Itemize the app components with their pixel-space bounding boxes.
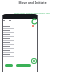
button[interactable]: [3, 50, 38, 53]
button[interactable]: [5, 64, 13, 67]
button[interactable]: Progress ring: [31, 18, 38, 25]
button[interactable]: [3, 30, 38, 33]
button[interactable]: [16, 64, 31, 67]
staticText: keep your streak alive every day: [14, 11, 50, 14]
button[interactable]: [3, 38, 38, 41]
button[interactable]: [3, 34, 38, 37]
button[interactable]: [3, 26, 38, 29]
button[interactable]: [3, 54, 38, 57]
button[interactable]: [3, 42, 38, 45]
button[interactable]: [3, 46, 38, 49]
button[interactable]: Record: [31, 58, 37, 64]
staticText: Move and Initiate: [18, 1, 47, 5]
